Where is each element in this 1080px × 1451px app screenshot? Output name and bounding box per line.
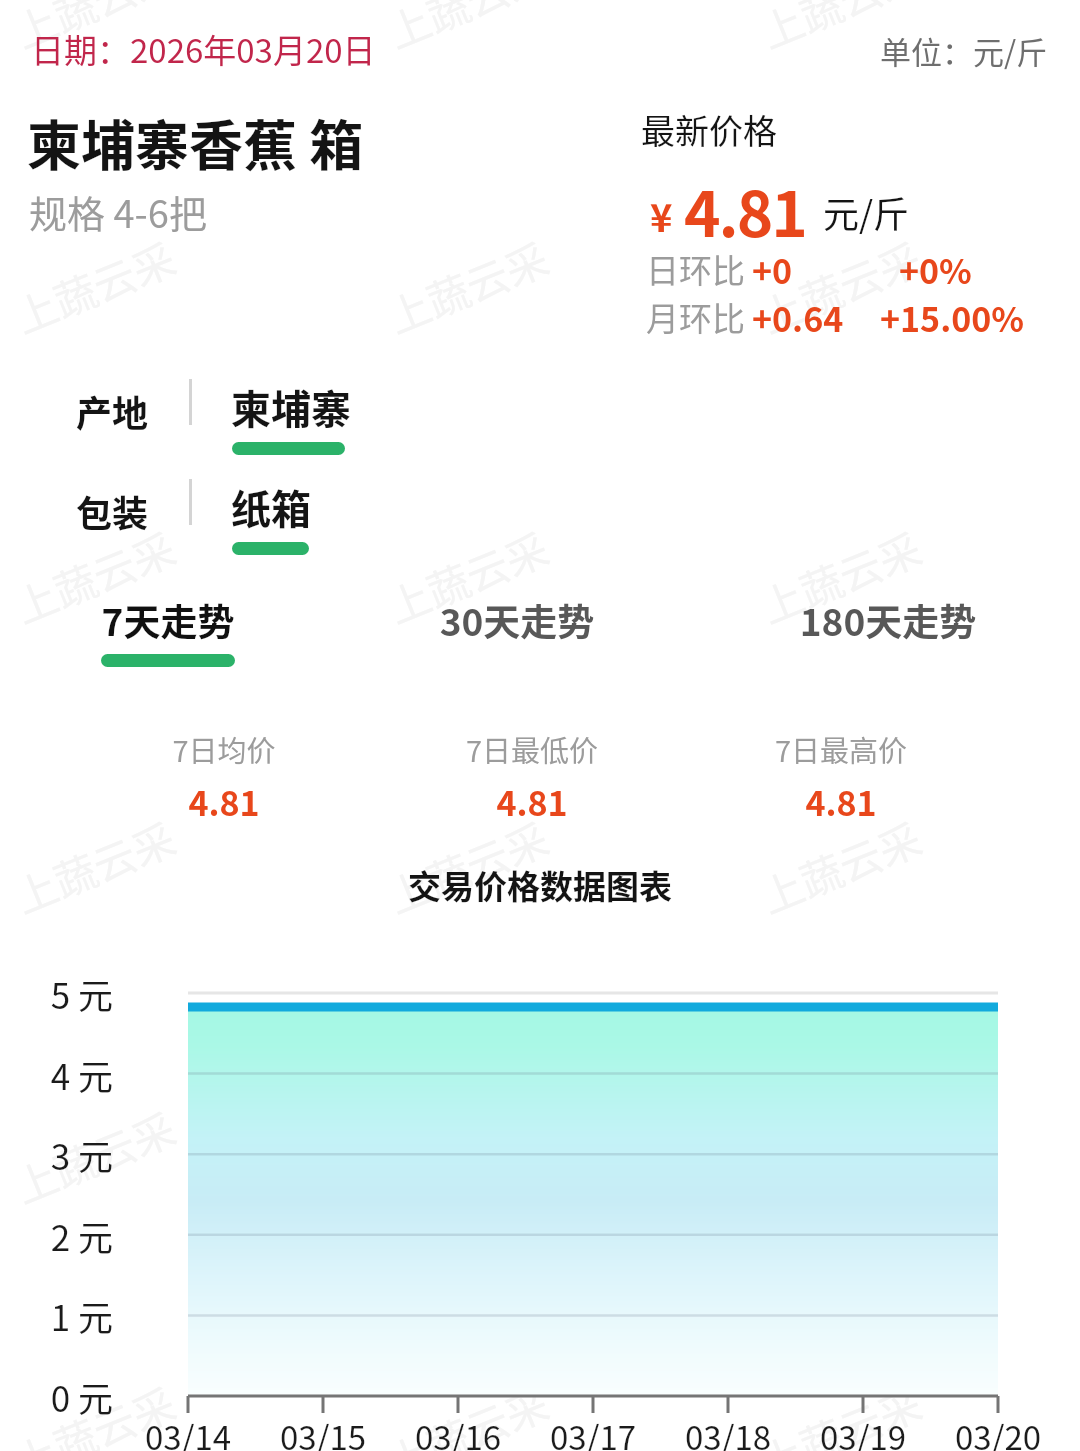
staticText: +0 (752, 245, 793, 294)
staticText: 上蔬云采 (378, 226, 557, 345)
staticText: +0% (899, 245, 972, 294)
button[interactable]: 7天走势 (18, 593, 318, 667)
staticText: 规格 4-6把 (29, 184, 207, 239)
staticText: 最新价格 (641, 105, 777, 154)
staticText: 上蔬云采 (5, 806, 184, 925)
staticText: 上蔬云采 (378, 516, 557, 635)
staticText: 柬埔寨 (231, 378, 351, 436)
staticText: 日期：2026年03月20日 (31, 25, 376, 73)
staticText: 交易价格数据图表 (0, 861, 1080, 909)
staticText: 7日最低价 (382, 728, 682, 770)
staticText: 元/斤 (823, 186, 910, 238)
staticText: 4.81 (74, 777, 374, 826)
staticText: 上蔬云采 (378, 806, 557, 925)
staticText: +0.64 (752, 293, 844, 342)
button[interactable]: 柬埔寨 (231, 378, 351, 455)
staticText: 上蔬云采 (751, 1371, 930, 1451)
button[interactable]: 30天走势 (367, 593, 667, 654)
staticText: 包装 (76, 485, 149, 537)
staticText: 4.81 (691, 777, 991, 826)
staticText: 30天走势 (367, 593, 667, 647)
staticText: 5 元 (0, 968, 113, 1019)
staticText: 上蔬云采 (5, 1371, 184, 1451)
staticText: +15.00% (880, 293, 1025, 342)
staticText: 上蔬云采 (751, 1096, 930, 1215)
staticText: 上蔬云采 (378, 0, 557, 61)
button[interactable]: 纸箱 (231, 478, 311, 555)
staticText: 上蔬云采 (751, 516, 930, 635)
staticText: 上蔬云采 (751, 0, 930, 61)
button[interactable]: 180天走势 (738, 593, 1038, 654)
staticText: 单位：元/斤 (880, 28, 1048, 73)
staticText: 03/17 (523, 1412, 663, 1451)
staticText: 上蔬云采 (378, 1371, 557, 1451)
staticText: 7天走势 (18, 593, 318, 647)
staticText: 上蔬云采 (5, 1096, 184, 1215)
staticText: 上蔬云采 (5, 516, 184, 635)
staticText: 柬埔寨香蕉 箱 (27, 103, 364, 181)
staticText: 4.81 (684, 165, 806, 255)
staticText: 180天走势 (738, 593, 1038, 647)
staticText: 03/18 (658, 1412, 798, 1451)
staticText: 纸箱 (231, 478, 311, 536)
staticText: 上蔬云采 (751, 806, 930, 925)
staticText: 3 元 (0, 1129, 113, 1180)
staticText: 产地 (76, 385, 149, 437)
staticText: 03/16 (388, 1412, 528, 1451)
staticText: 上蔬云采 (751, 226, 930, 345)
staticText: 4.81 (382, 777, 682, 826)
staticText: ¥ (650, 188, 673, 243)
staticText: 7日均价 (74, 728, 374, 770)
staticText: 月环比 (646, 293, 745, 341)
staticText: 7日最高价 (691, 728, 991, 770)
staticText: 4 元 (0, 1049, 113, 1100)
staticText: 0 元 (0, 1371, 113, 1422)
staticText: 上蔬云采 (5, 0, 184, 61)
staticText: 上蔬云采 (5, 226, 184, 345)
staticText: 上蔬云采 (378, 1096, 557, 1215)
staticText: 日环比 (646, 245, 745, 293)
staticText: 1 元 (0, 1290, 113, 1341)
staticText: 03/14 (118, 1412, 258, 1451)
staticText: 03/20 (928, 1412, 1068, 1451)
other: 交易价格走势图 (0, 0, 1080, 1451)
staticText: 03/19 (793, 1412, 933, 1451)
staticText: 2 元 (0, 1210, 113, 1261)
staticText: 03/15 (253, 1412, 393, 1451)
